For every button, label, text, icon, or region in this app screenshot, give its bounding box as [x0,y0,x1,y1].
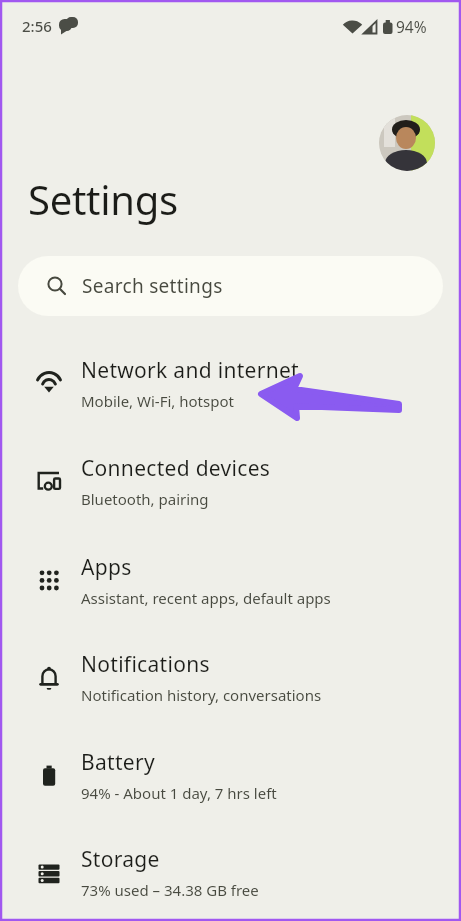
button[interactable]: Network and internet [0,334,461,432]
staticText: Search settings [82,273,223,299]
staticText: Assistant, recent apps, default apps [81,588,331,608]
button[interactable]: Apps [0,531,461,629]
staticText: Battery [81,748,155,777]
staticText: Settings [28,172,178,226]
staticText: Network and internet [81,356,299,385]
staticText: 94% [396,16,427,37]
button[interactable]: Search settings [18,256,443,316]
staticText: Connected devices [81,454,271,483]
button[interactable] [379,115,435,171]
staticText: Storage [81,845,160,874]
staticText: Apps [81,553,132,582]
staticText: Notifications [81,650,210,679]
staticText: 73% used – 34.38 GB free [81,880,259,900]
button[interactable]: Notifications [0,628,461,726]
button[interactable]: Connected devices [0,432,461,530]
staticText: Bluetooth, pairing [81,489,209,509]
staticText: 94% - About 1 day, 7 hrs left [81,783,277,803]
staticText: Notification history, conversations [81,685,322,705]
button[interactable]: Storage [0,823,461,921]
button[interactable]: Battery [0,726,461,824]
staticText: Mobile, Wi-Fi, hotspot [81,391,234,411]
staticText: 2:56 [22,16,52,36]
